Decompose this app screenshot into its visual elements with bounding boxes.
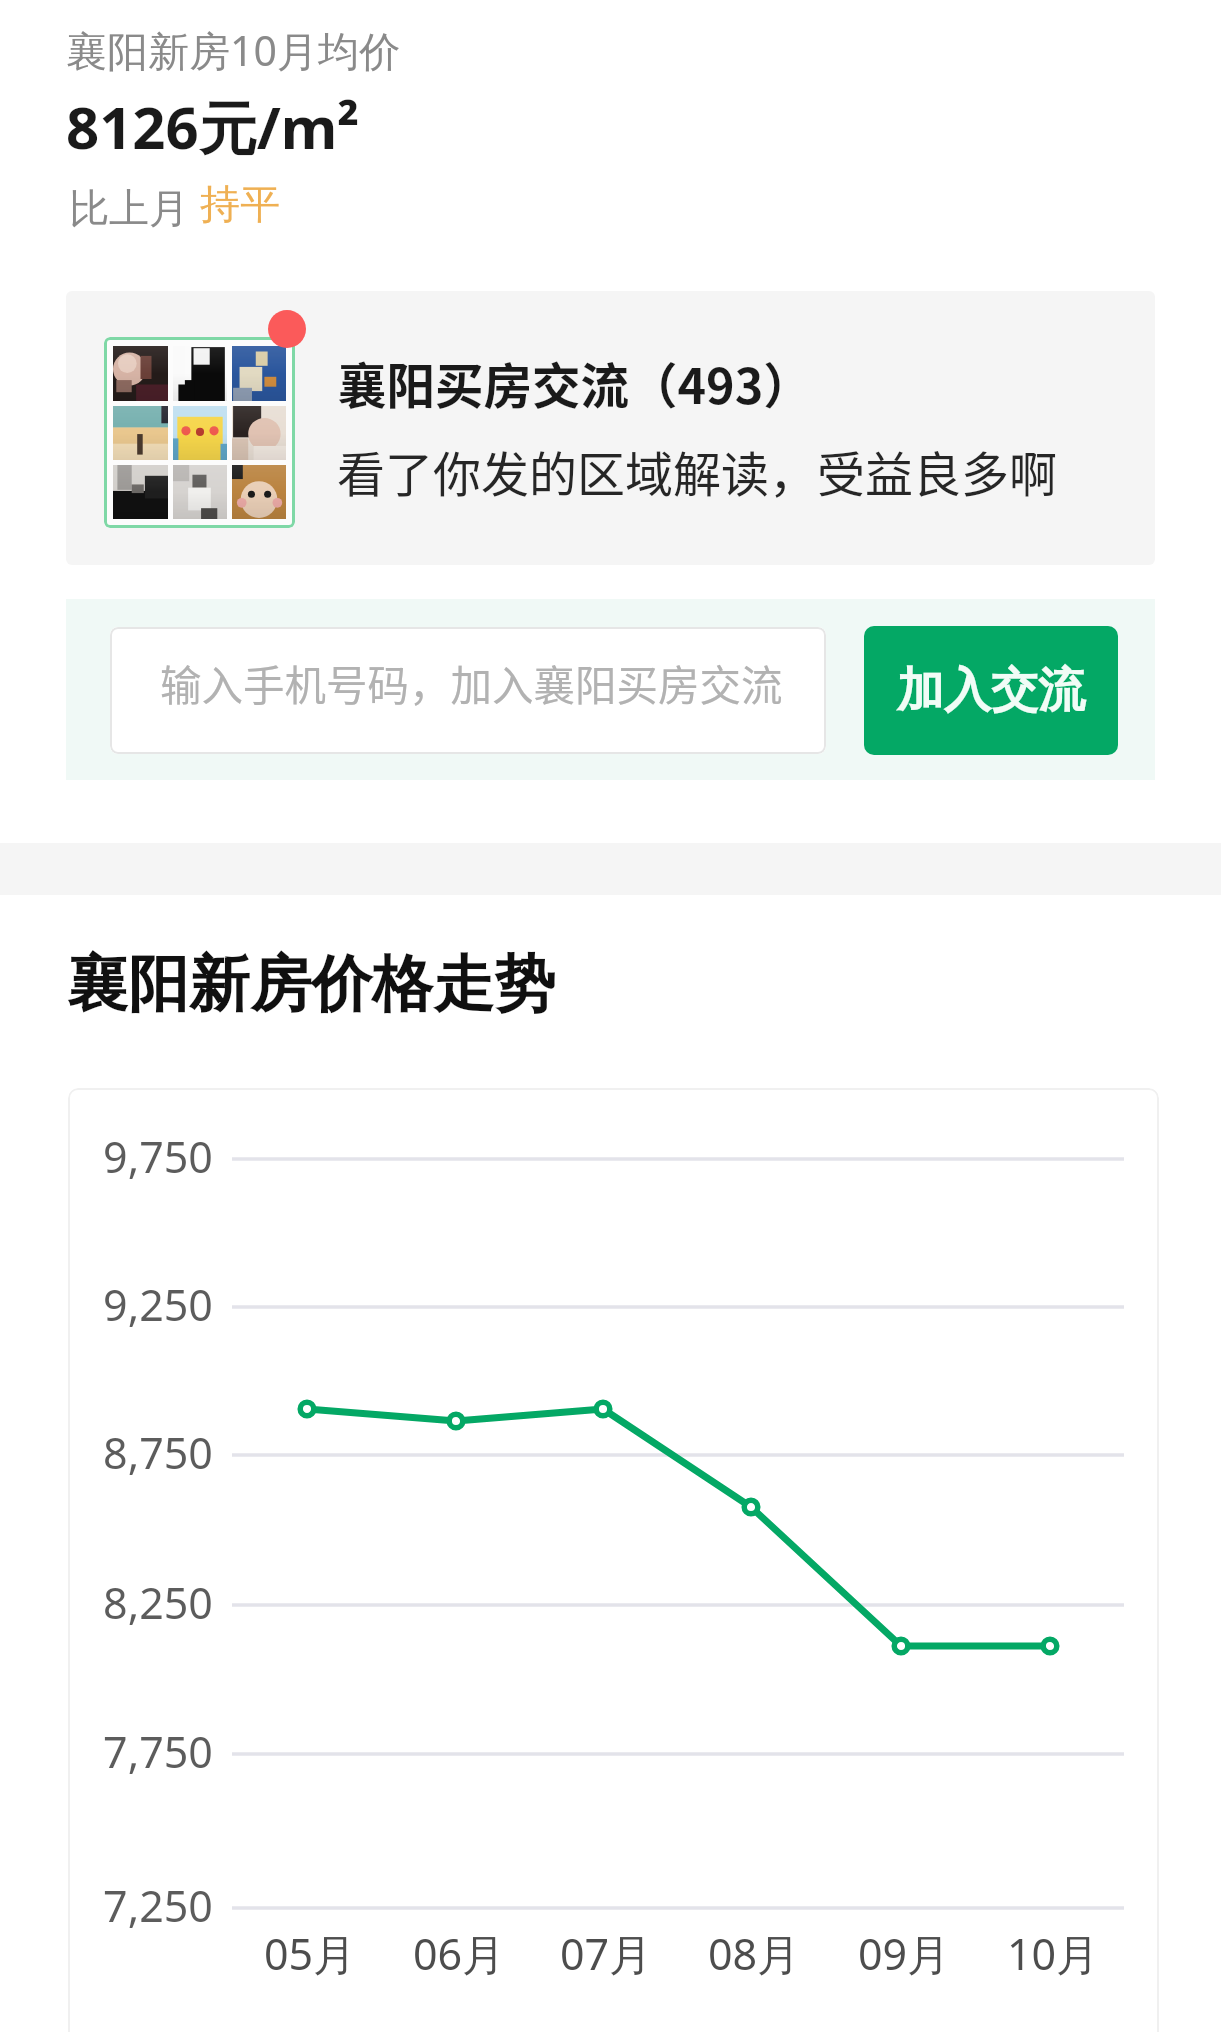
staticText: 07月 (536, 1924, 676, 1983)
staticText: 襄阳新房10月均价 (66, 22, 400, 78)
button[interactable]: 群聊头像 襄阳买房交流 (66, 291, 1155, 565)
staticText: 8,250 (90, 1573, 226, 1632)
staticText: 05月 (240, 1924, 380, 1983)
staticText: 襄阳新房价格走势 (67, 946, 555, 1023)
staticText: 7,750 (90, 1722, 226, 1781)
staticText: 9,750 (90, 1127, 226, 1186)
staticText: 加入交流 (897, 661, 1085, 720)
staticText: 08月 (684, 1924, 824, 1983)
staticText: 比上月 (69, 179, 200, 234)
staticText: 7,250 (90, 1876, 226, 1935)
button[interactable]: 加入交流 (864, 626, 1118, 755)
staticText: 8126元/m² (66, 87, 360, 166)
staticText: 8,750 (90, 1423, 226, 1482)
staticText: 10月 (983, 1924, 1123, 1983)
button[interactable]: 群聊头像 襄阳买房交流 (104, 337, 295, 528)
staticText: 9,250 (90, 1275, 226, 1334)
staticText: 09月 (834, 1924, 974, 1983)
staticText: 持平 (200, 179, 280, 229)
staticText: 襄阳买房交流（493） (338, 348, 812, 418)
staticText: 输入手机号码，加入襄阳买房交流 (160, 653, 783, 713)
button[interactable]: 输入手机号码，加入襄阳买房交流 (110, 627, 826, 754)
staticText: 看了你发的区域解读，受益良多啊 (337, 436, 1058, 506)
staticText: 06月 (389, 1924, 529, 1983)
other: 未读消息 (268, 310, 306, 348)
